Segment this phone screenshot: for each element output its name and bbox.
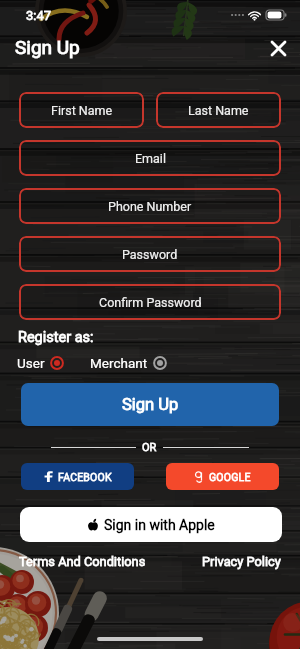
staticText: OR bbox=[142, 441, 157, 454]
button[interactable]: Sign Up bbox=[21, 383, 279, 426]
button[interactable]: Confirm Password bbox=[19, 284, 281, 320]
button[interactable]: Privacy Policy bbox=[202, 554, 281, 569]
staticText: Email bbox=[135, 151, 166, 166]
button[interactable]: FACEBOOK bbox=[21, 463, 134, 490]
button[interactable]: Email bbox=[19, 140, 281, 176]
button[interactable]: GOOGLE bbox=[166, 463, 279, 490]
staticText: User bbox=[17, 355, 45, 371]
staticText: First Name bbox=[51, 103, 113, 118]
button[interactable]: Last Name bbox=[156, 92, 281, 128]
staticText: Sign Up bbox=[15, 36, 80, 58]
staticText: Sign in with Apple bbox=[104, 517, 215, 533]
button[interactable]: Terms And Conditions bbox=[19, 554, 146, 569]
staticText: GOOGLE bbox=[209, 471, 251, 483]
staticText: 3:47 bbox=[26, 8, 52, 23]
button[interactable]: Password bbox=[19, 236, 281, 272]
button[interactable]: Sign in with Apple bbox=[20, 507, 282, 542]
staticText: Confirm Password bbox=[99, 295, 202, 310]
staticText: Merchant bbox=[90, 355, 148, 371]
staticText: Last Name bbox=[188, 103, 249, 118]
button[interactable]: Merchant bbox=[90, 355, 167, 371]
button[interactable]: Close bbox=[265, 35, 291, 61]
button[interactable]: User bbox=[17, 355, 64, 371]
staticText: Sign Up bbox=[122, 395, 179, 414]
button[interactable]: First Name bbox=[19, 92, 144, 128]
staticText: Register as: bbox=[18, 329, 94, 346]
staticText: FACEBOOK bbox=[58, 471, 112, 483]
staticText: Password bbox=[122, 247, 178, 262]
button[interactable]: Phone Number bbox=[19, 188, 281, 224]
staticText: Phone Number bbox=[108, 199, 192, 214]
